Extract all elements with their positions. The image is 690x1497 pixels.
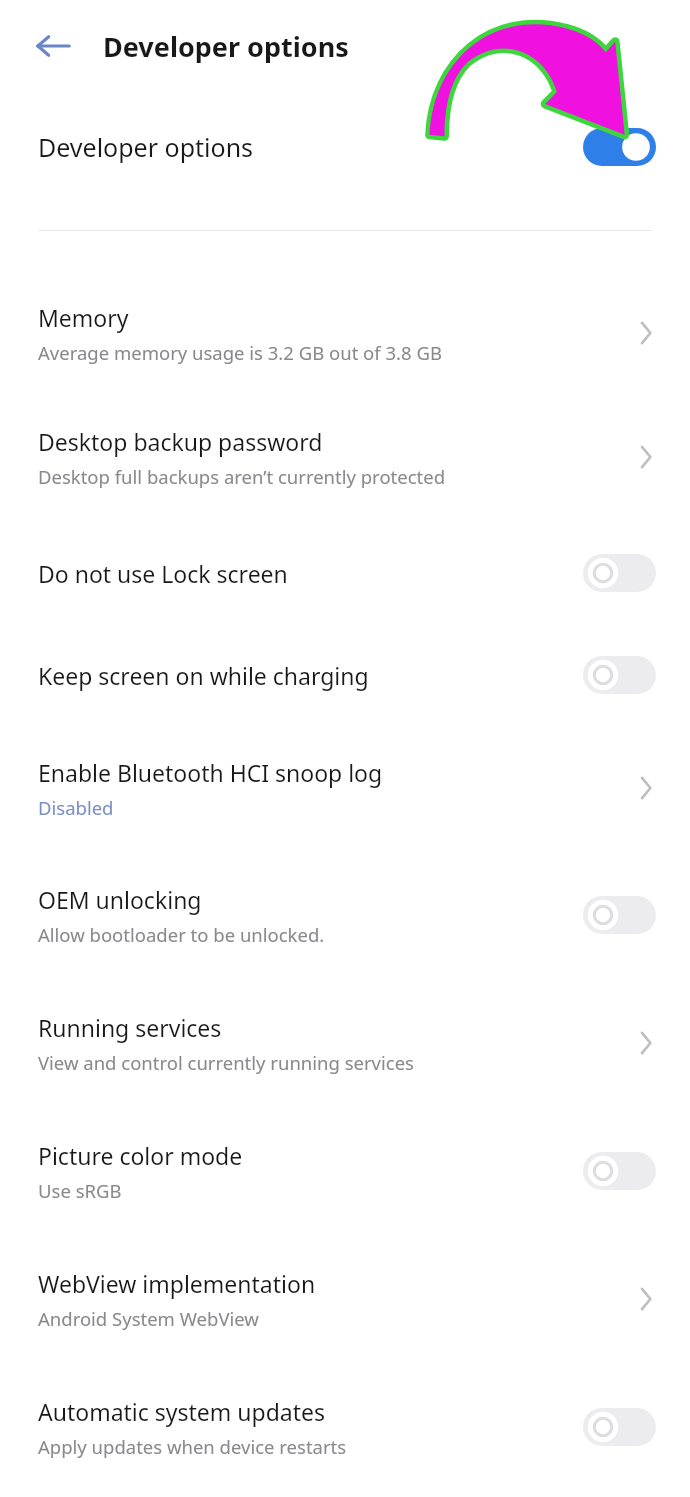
staticText: Allow bootloader to be unlocked. (38, 922, 325, 947)
staticText: Developer options (38, 130, 254, 164)
staticText: Do not use Lock screen (38, 558, 288, 589)
staticText: Apply updates when device restarts (38, 1434, 347, 1459)
staticText: Desktop full backups aren’t currently pr… (38, 464, 446, 489)
staticText: OEM unlocking (38, 884, 202, 915)
staticText: Use sRGB (38, 1178, 122, 1203)
staticText: Running services (38, 1012, 222, 1043)
staticText: Keep screen on while charging (38, 660, 369, 691)
button[interactable]: Running services (0, 979, 690, 1107)
staticText: WebView implementation (38, 1268, 316, 1299)
staticText: Picture color mode (38, 1140, 243, 1171)
staticText: Desktop backup password (38, 426, 323, 457)
button[interactable]: Memory (0, 273, 690, 393)
button[interactable]: Desktop backup password (0, 393, 690, 521)
staticText: View and control currently running servi… (38, 1050, 414, 1075)
staticText: Automatic system updates (38, 1396, 326, 1427)
staticText: Disabled (38, 795, 114, 820)
button[interactable]: WebView implementation (0, 1235, 690, 1363)
button[interactable]: Developer options (0, 92, 690, 202)
button[interactable]: Do not use Lock screen (0, 521, 690, 625)
button[interactable]: OEM unlocking (0, 851, 690, 979)
staticText: Developer options (103, 28, 349, 65)
button[interactable]: Picture color mode (0, 1107, 690, 1235)
staticText: Memory (38, 302, 129, 333)
button[interactable]: Enable Bluetooth HCI snoop log (0, 725, 690, 851)
staticText: Enable Bluetooth HCI snoop log (38, 757, 383, 788)
button[interactable]: Keep screen on while charging (0, 625, 690, 725)
staticText: Android System WebView (38, 1306, 259, 1331)
button[interactable]: Back (26, 19, 80, 73)
button[interactable]: Automatic system updates (0, 1363, 690, 1491)
staticText: Average memory usage is 3.2 GB out of 3.… (38, 340, 442, 365)
